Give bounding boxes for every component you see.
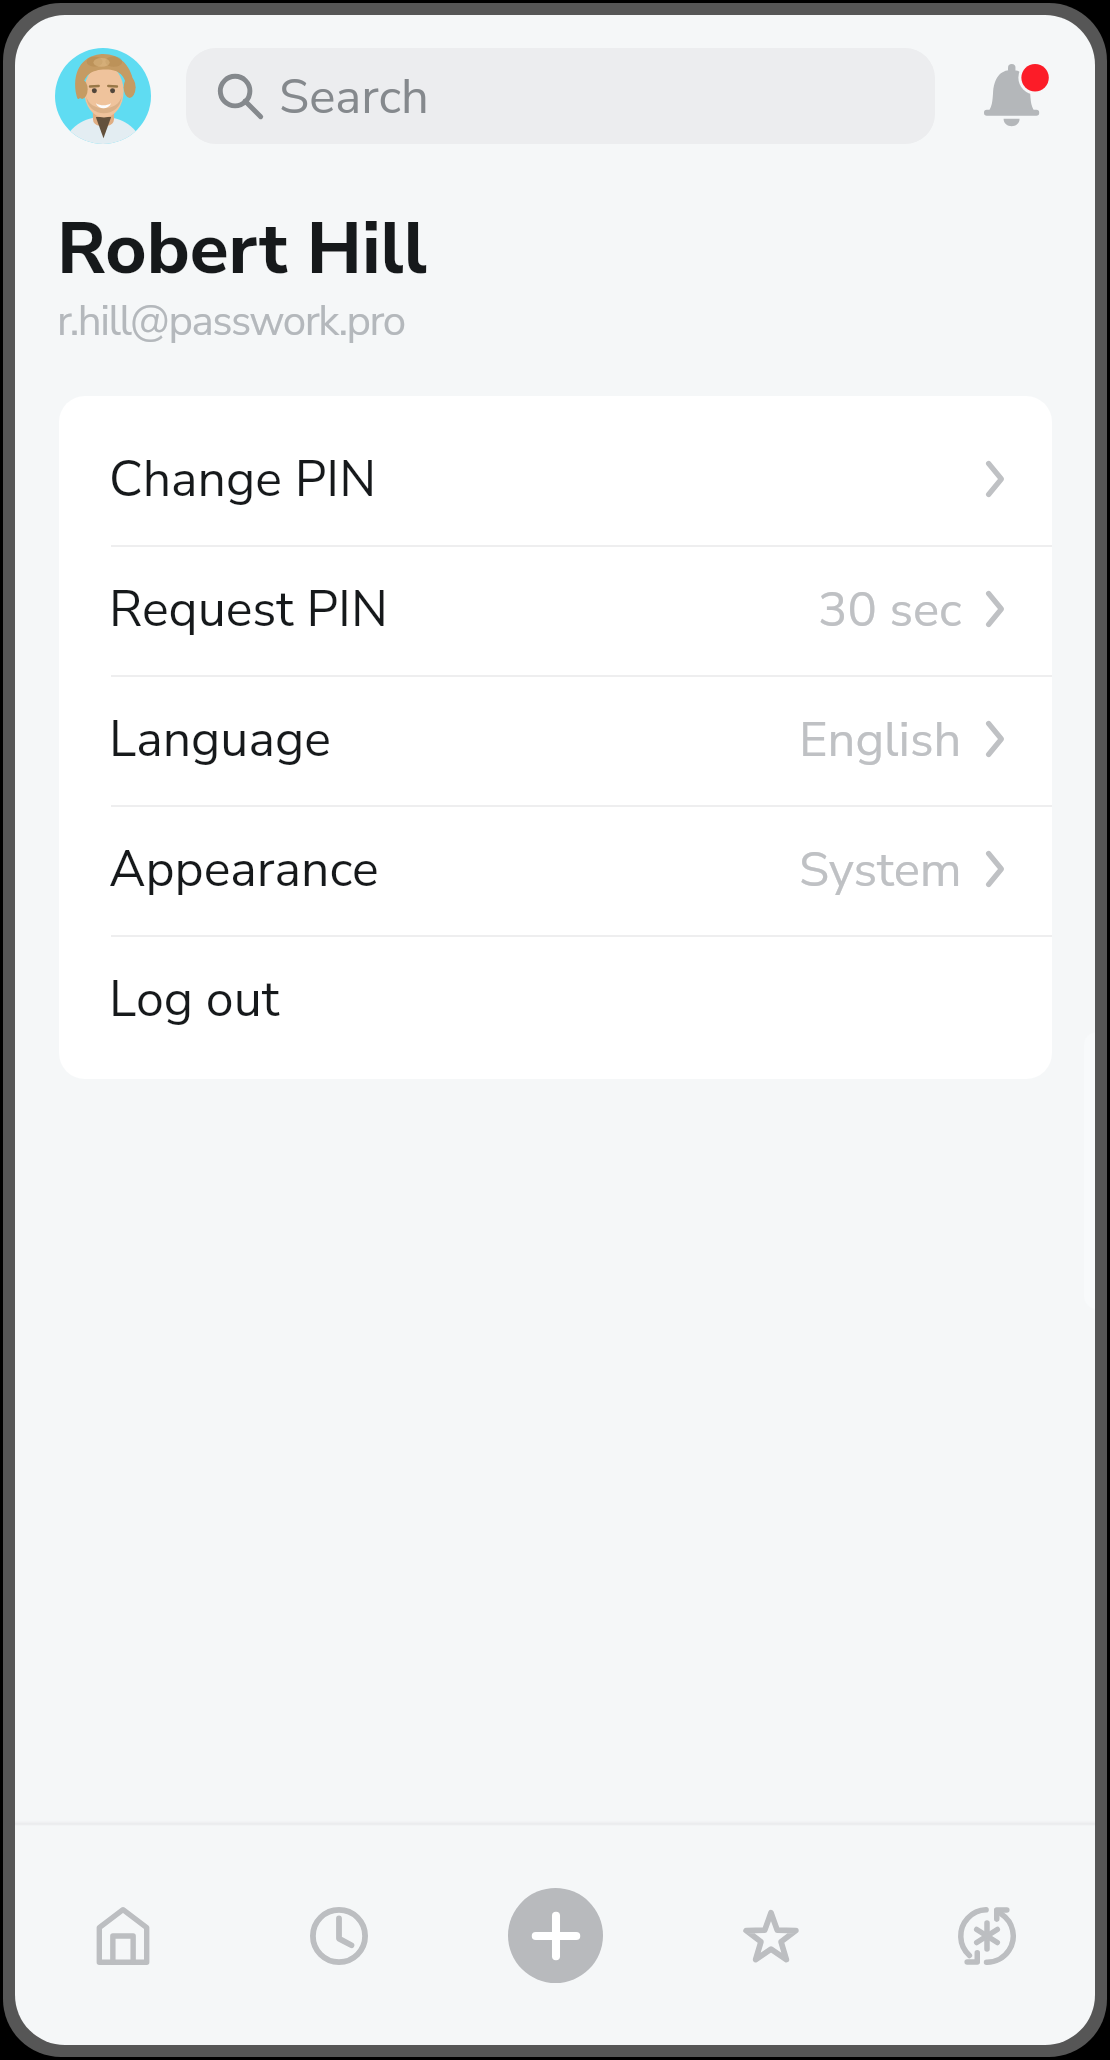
button[interactable]: Favorites [663, 1826, 879, 2045]
button[interactable]: Add new item [508, 1888, 603, 1983]
button[interactable]: Language [59, 677, 1052, 805]
button[interactable]: Home [15, 1826, 231, 2045]
button[interactable]: Log out [59, 937, 1052, 1065]
staticText: Search [279, 63, 429, 130]
button[interactable]: Change PIN [59, 417, 1052, 545]
staticText: Log out [109, 965, 280, 1033]
staticText: Appearance [109, 835, 379, 903]
button[interactable]: Password generator [879, 1826, 1095, 2045]
button[interactable]: Notifications [967, 47, 1065, 145]
staticText: r.hill@passwork.pro [57, 293, 405, 350]
staticText: Request PIN [109, 575, 388, 643]
button[interactable]: History [231, 1826, 447, 2045]
button[interactable]: Appearance [59, 807, 1052, 935]
staticText: Language [109, 705, 331, 773]
staticText: Change PIN [109, 445, 377, 513]
button[interactable]: Request PIN [59, 547, 1052, 675]
staticText: 30 sec [818, 576, 962, 643]
button[interactable]: Profile [55, 48, 151, 144]
staticText: Robert Hill [57, 201, 428, 298]
button[interactable]: Search [186, 48, 935, 144]
staticText: English [799, 706, 962, 773]
staticText: System [799, 836, 962, 903]
